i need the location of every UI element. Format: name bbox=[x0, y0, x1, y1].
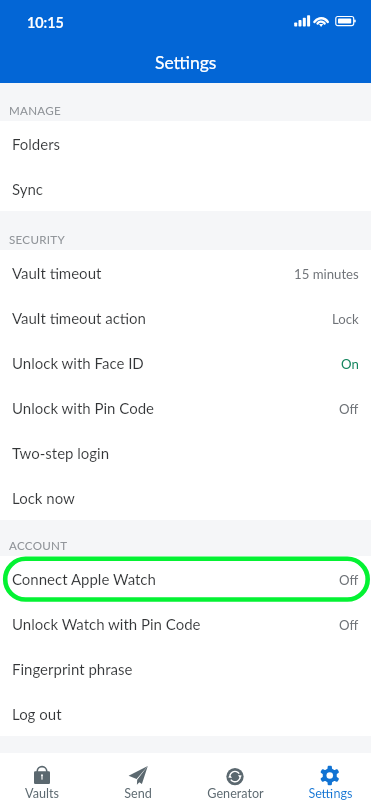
button[interactable]: Send bbox=[93, 753, 183, 811]
staticText: ACCOUNT bbox=[9, 539, 68, 553]
staticText: Log out bbox=[12, 705, 62, 723]
staticText: Two-step login bbox=[12, 444, 110, 462]
staticText: Send bbox=[124, 786, 152, 801]
staticText: Unlock Watch with Pin Code bbox=[12, 615, 201, 633]
staticText: Settings bbox=[308, 786, 353, 801]
staticText: Connect Apple Watch bbox=[12, 570, 156, 588]
button[interactable]: Sync bbox=[0, 166, 371, 211]
button[interactable]: Unlock with Face ID bbox=[0, 340, 371, 385]
staticText: MANAGE bbox=[9, 104, 61, 118]
button[interactable]: Unlock with Pin Code bbox=[0, 385, 371, 430]
staticText: Sync bbox=[12, 180, 44, 198]
staticText: Off bbox=[339, 401, 359, 417]
button[interactable]: Connect Apple Watch bbox=[0, 556, 371, 601]
staticText: Unlock with Pin Code bbox=[12, 399, 154, 417]
button[interactable]: Fingerprint phrase bbox=[0, 646, 371, 691]
staticText: Vaults bbox=[25, 786, 59, 801]
staticText: Generator bbox=[207, 786, 264, 801]
button[interactable]: Vault timeout bbox=[0, 250, 371, 295]
staticText: On bbox=[341, 356, 359, 372]
button[interactable]: Lock now bbox=[0, 475, 371, 520]
button[interactable]: Vault timeout action bbox=[0, 295, 371, 340]
button[interactable]: Two-step login bbox=[0, 430, 371, 475]
staticText: Folders bbox=[12, 135, 61, 153]
staticText: SECURITY bbox=[9, 233, 65, 247]
button[interactable]: Log out bbox=[0, 691, 371, 736]
button[interactable]: Generator bbox=[190, 753, 280, 811]
staticText: 10:15 bbox=[27, 14, 64, 31]
staticText: Lock bbox=[332, 311, 359, 327]
staticText: Fingerprint phrase bbox=[12, 660, 133, 678]
staticText: Off bbox=[339, 572, 359, 588]
button[interactable]: Settings bbox=[285, 753, 371, 811]
staticText: 15 minutes bbox=[294, 266, 359, 282]
staticText: Vault timeout action bbox=[12, 309, 146, 327]
staticText: Settings bbox=[155, 52, 217, 73]
button[interactable]: Unlock Watch with Pin Code bbox=[0, 601, 371, 646]
button[interactable]: Folders bbox=[0, 121, 371, 166]
staticText: Vault timeout bbox=[12, 264, 102, 282]
staticText: Unlock with Face ID bbox=[12, 354, 144, 372]
staticText: Off bbox=[339, 617, 359, 633]
button[interactable]: Vaults bbox=[0, 753, 87, 811]
staticText: Lock now bbox=[12, 489, 75, 507]
